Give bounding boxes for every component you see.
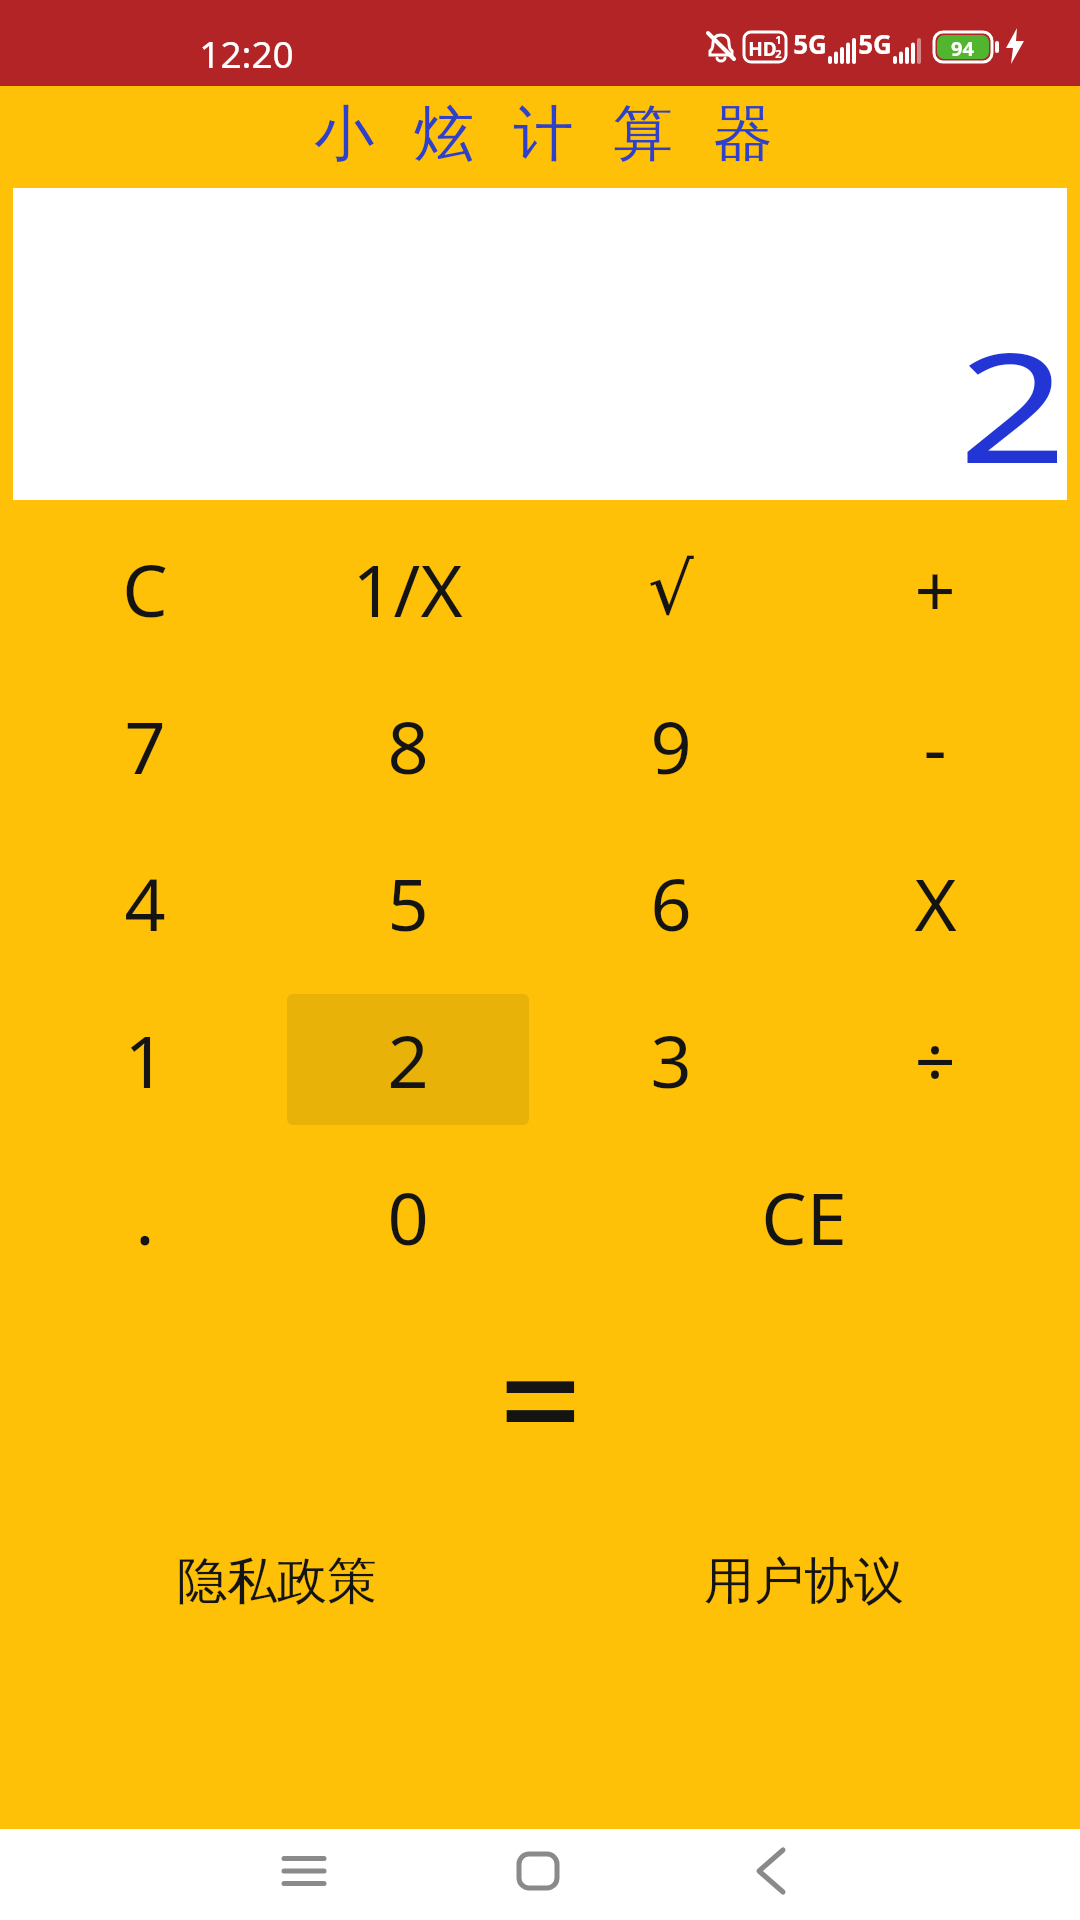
staticText: + bbox=[914, 540, 956, 638]
staticText: CE bbox=[761, 1168, 847, 1266]
staticText: 8 bbox=[387, 697, 429, 795]
staticText: 3 bbox=[650, 1011, 692, 1109]
button[interactable]: 用户协议 bbox=[540, 1511, 1067, 1651]
button[interactable]: - bbox=[803, 667, 1067, 824]
staticText: - bbox=[923, 697, 947, 795]
button[interactable]: 9 bbox=[539, 667, 803, 824]
button[interactable]: 8 bbox=[276, 667, 539, 824]
staticText: 0 bbox=[387, 1168, 429, 1266]
staticText: 2 bbox=[775, 46, 782, 61]
button[interactable] bbox=[264, 1835, 344, 1906]
staticText: 6 bbox=[650, 854, 692, 952]
button[interactable] bbox=[498, 1835, 578, 1906]
button[interactable]: C bbox=[13, 510, 276, 667]
staticText: 用户协议 bbox=[704, 1550, 904, 1613]
staticText: . bbox=[135, 1168, 155, 1266]
staticText: 94 bbox=[951, 35, 974, 62]
staticText: C bbox=[122, 540, 168, 638]
staticText: 5G bbox=[858, 26, 892, 61]
staticText: ÷ bbox=[914, 1011, 956, 1109]
button[interactable]: 4 bbox=[13, 824, 276, 981]
staticText: 7 bbox=[124, 697, 166, 795]
staticText: 1/X bbox=[352, 540, 463, 638]
staticText: 隐私政策 bbox=[177, 1550, 377, 1613]
staticText: 2 bbox=[387, 1011, 429, 1109]
button[interactable]: 6 bbox=[539, 824, 803, 981]
button[interactable] bbox=[730, 1835, 810, 1906]
staticText: 2 bbox=[958, 301, 1067, 508]
button[interactable]: = bbox=[0, 1320, 1080, 1480]
staticText: HD bbox=[748, 36, 777, 62]
staticText: 小 炫 计 算 器 bbox=[314, 90, 785, 172]
staticText: 4 bbox=[124, 854, 166, 952]
button[interactable]: ÷ bbox=[803, 981, 1067, 1138]
button[interactable]: √ bbox=[539, 510, 803, 667]
button[interactable]: 0 bbox=[276, 1138, 540, 1295]
button[interactable]: . bbox=[13, 1138, 276, 1295]
staticText: = bbox=[499, 1298, 582, 1458]
staticText: √ bbox=[648, 547, 694, 631]
staticText: 5G bbox=[793, 26, 827, 61]
button[interactable]: 1/X bbox=[276, 510, 539, 667]
staticText: 5 bbox=[387, 854, 429, 952]
button[interactable]: 5 bbox=[276, 824, 539, 981]
button[interactable]: 1 bbox=[13, 981, 276, 1138]
button[interactable]: + bbox=[803, 510, 1067, 667]
button[interactable]: 2 bbox=[276, 981, 539, 1138]
button[interactable]: X bbox=[803, 824, 1067, 981]
button[interactable]: 隐私政策 bbox=[13, 1511, 540, 1651]
staticText: 1 bbox=[124, 1011, 166, 1109]
button[interactable]: 7 bbox=[13, 667, 276, 824]
staticText: 1 bbox=[775, 32, 782, 47]
staticText: X bbox=[914, 854, 957, 952]
button[interactable]: 3 bbox=[539, 981, 803, 1138]
button[interactable]: CE bbox=[540, 1138, 1067, 1295]
staticText: 9 bbox=[650, 697, 692, 795]
staticText: 12:20 bbox=[199, 28, 294, 78]
